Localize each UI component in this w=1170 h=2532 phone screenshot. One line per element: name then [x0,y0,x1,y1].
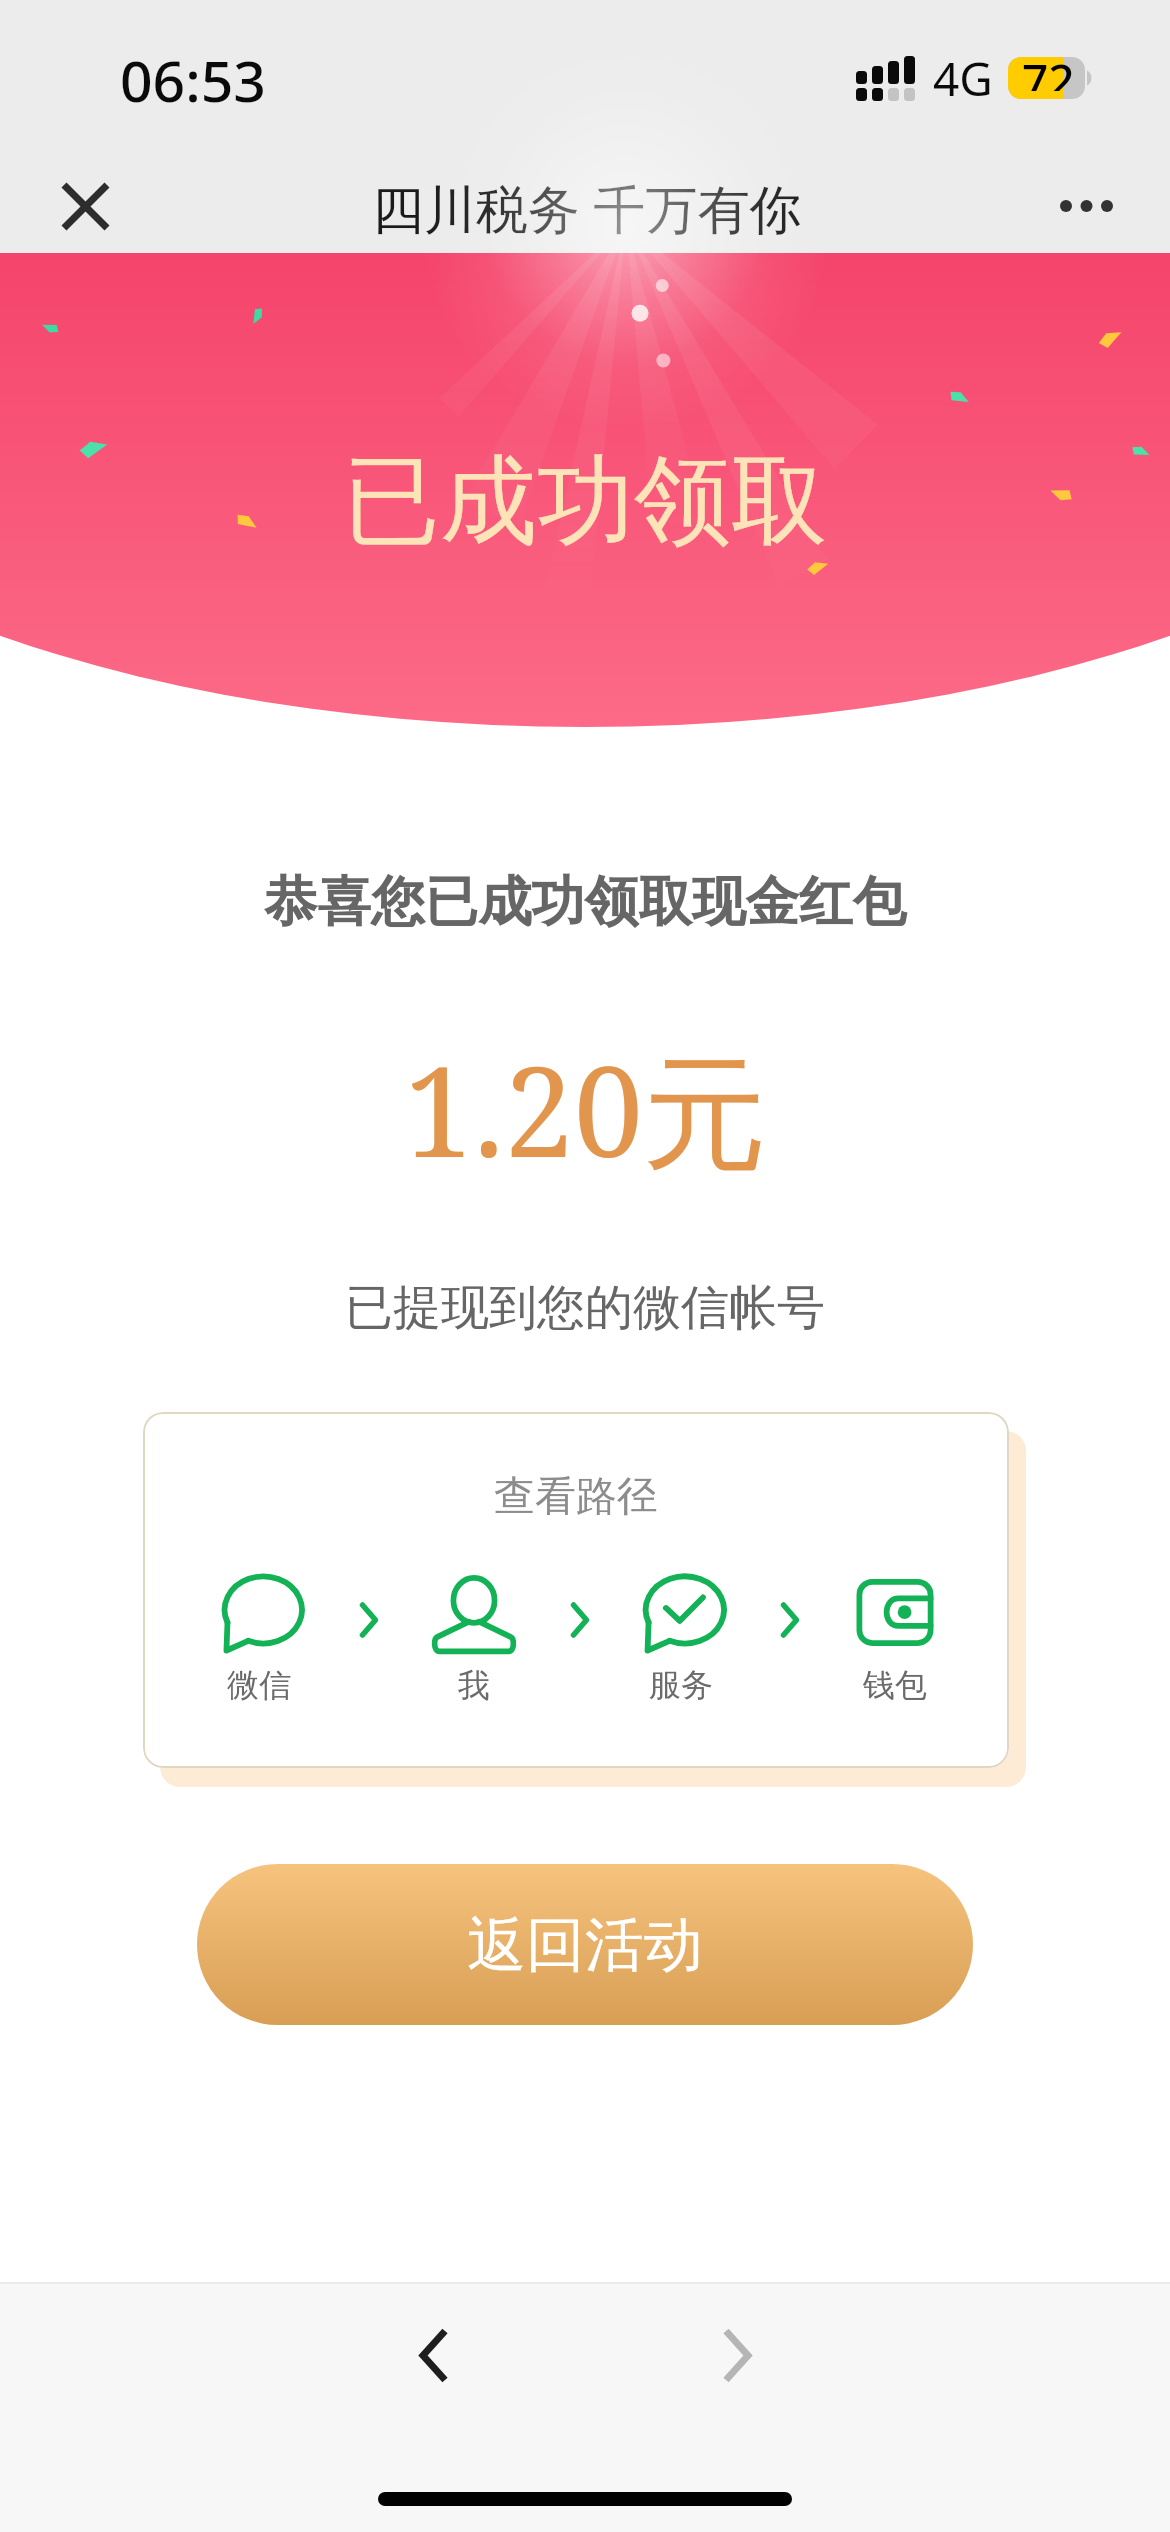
staticText: 返回活动 [467,1908,703,1982]
button[interactable]: 返回活动 [197,1864,973,2025]
staticText: 恭喜您已成功领取现金红包 [264,868,906,935]
button[interactable]: 查看路径 [143,1412,1009,1768]
staticText: 已成功领取 [343,441,828,563]
staticText: 四川税务 千万有你 [372,172,802,243]
button[interactable]: Close [40,161,130,251]
staticText: 06:53 [120,41,266,119]
staticText: 我 [458,1665,490,1705]
staticText: 查看路径 [494,1471,658,1523]
button[interactable]: More options [1041,161,1131,251]
button[interactable]: Back [374,2295,494,2415]
staticText: 72 [1022,49,1075,91]
staticText: 1.20元 [404,1024,767,1193]
button[interactable]: Forward [677,2295,797,2415]
staticText: 服务 [649,1665,713,1705]
staticText: 钱包 [863,1665,927,1705]
staticText: 已提现到您的微信帐号 [345,1278,825,1338]
staticText: 4G [933,47,993,110]
staticText: 微信 [227,1665,291,1705]
